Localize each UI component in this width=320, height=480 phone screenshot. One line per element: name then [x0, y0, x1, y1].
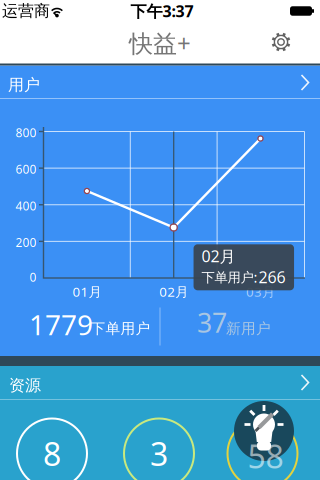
staticText: 02月 — [159, 283, 188, 300]
staticText: 下午3:37 — [130, 0, 193, 22]
staticText: 600 — [15, 161, 36, 177]
staticText: 58 — [247, 435, 283, 477]
staticText: 用户 — [8, 75, 40, 95]
staticText: 下单用户 — [201, 269, 253, 286]
staticText: 266 — [258, 266, 285, 288]
staticText: 运营商 — [2, 1, 50, 21]
staticText: 200 — [15, 234, 36, 250]
staticText: 资源 — [9, 376, 41, 395]
staticText: 8 — [43, 432, 61, 475]
staticText: 400 — [15, 198, 36, 214]
staticText: 3 — [150, 432, 168, 475]
staticText: 1779 — [29, 306, 93, 343]
staticText: 新用户 — [226, 319, 271, 337]
staticText: 0 — [29, 269, 36, 285]
button[interactable]: 新建 — [231, 398, 297, 464]
staticText: 800 — [15, 124, 36, 140]
staticText: 快益+ — [129, 27, 191, 59]
staticText: 37 — [197, 305, 227, 340]
staticText: 03月 — [246, 283, 275, 300]
staticText: : — [253, 267, 257, 287]
staticText: 02月 — [201, 245, 235, 267]
button[interactable]: 设置 — [263, 24, 299, 60]
button[interactable]: 用户 — [0, 65, 320, 99]
staticText: 01月 — [72, 283, 101, 300]
staticText: 下单用户 — [90, 319, 150, 337]
button[interactable]: 资源 — [0, 366, 320, 400]
